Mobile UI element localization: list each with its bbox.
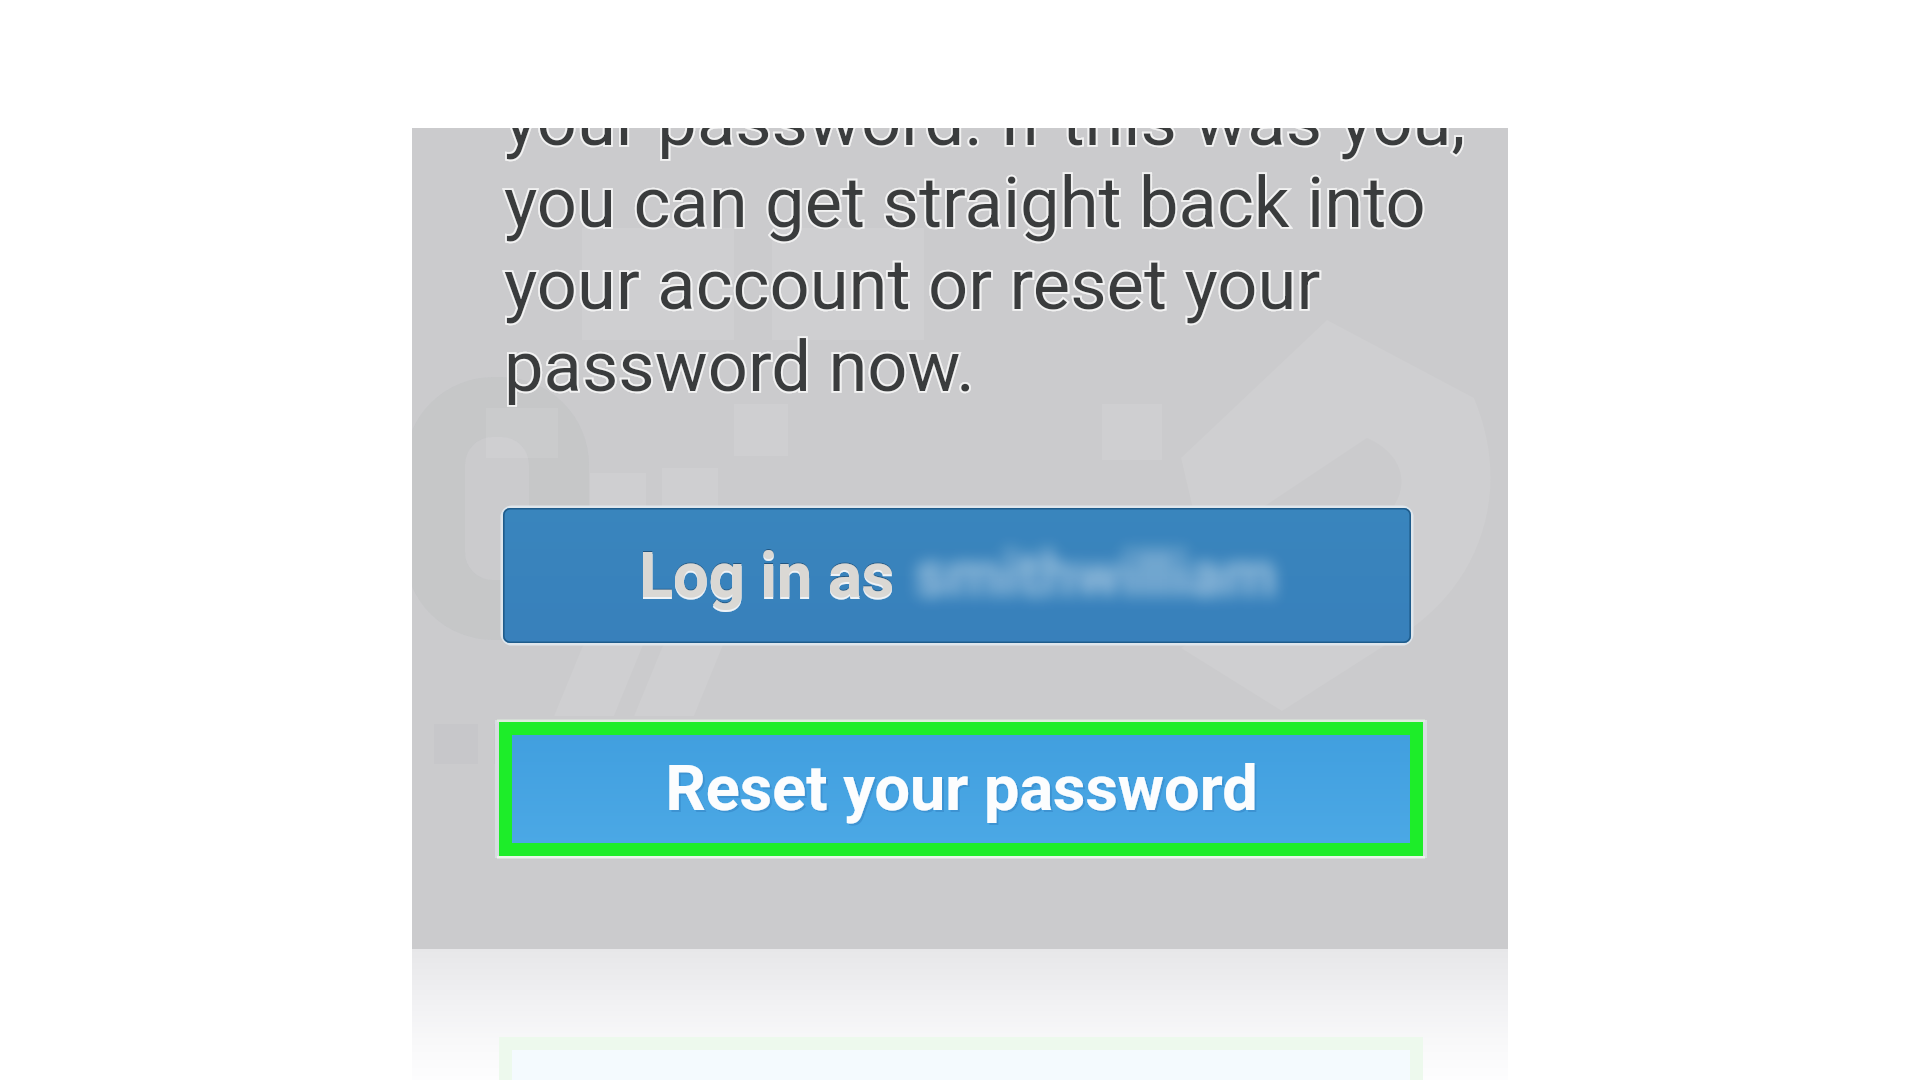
button[interactable]: Reset your password bbox=[499, 722, 1423, 856]
button[interactable]: Log in as bbox=[503, 508, 1411, 643]
staticText: Log in as bbox=[639, 541, 895, 615]
staticText: smithwilliamson bbox=[915, 538, 1295, 624]
staticText: your password. If this was you, you can … bbox=[504, 128, 1508, 408]
staticText: your password. If this was you, you can … bbox=[504, 128, 1508, 408]
staticText: Reset your password bbox=[665, 752, 1258, 826]
staticText: Log in as bbox=[639, 539, 895, 613]
staticText: Reset your password bbox=[667, 754, 1260, 828]
staticText: Log in as bbox=[639, 538, 895, 612]
